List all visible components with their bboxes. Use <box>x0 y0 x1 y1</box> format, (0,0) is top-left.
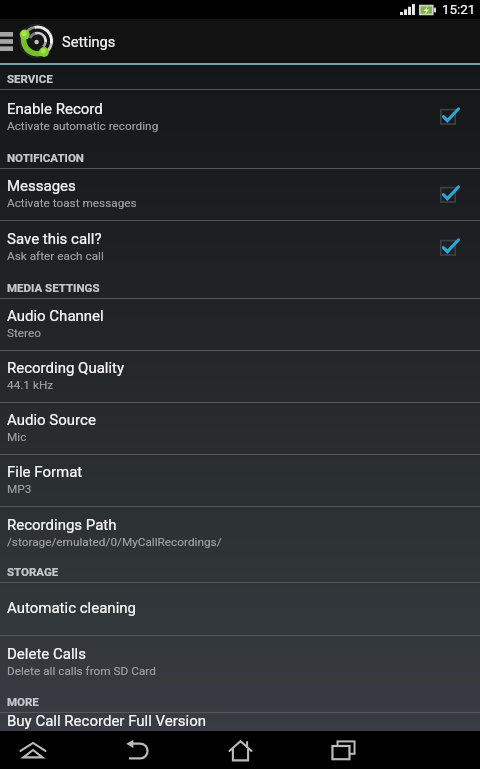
staticText: Settings <box>62 33 116 50</box>
staticText: Audio Source <box>7 411 96 429</box>
staticText: Delete all calls from SD Card <box>7 664 156 678</box>
button[interactable]: Enable Record <box>0 90 480 144</box>
staticText: Activate automatic recording <box>7 119 159 133</box>
button[interactable]: Recent apps <box>272 731 414 769</box>
button[interactable]: Recording Quality <box>0 351 480 403</box>
staticText: Recordings Path <box>7 516 117 534</box>
staticText: Activate toast messages <box>7 196 137 210</box>
staticText: Automatic cleaning <box>7 599 136 617</box>
staticText: Buy Call Recorder Full Version <box>7 712 207 730</box>
staticText: Ask after each call <box>7 249 104 263</box>
button[interactable]: Audio Channel <box>0 299 480 351</box>
staticText: File Format <box>7 463 83 481</box>
staticText: Messages <box>7 177 76 195</box>
staticText: Delete Calls <box>7 645 86 663</box>
staticText: STORAGE <box>7 565 59 578</box>
button[interactable]: File Format <box>0 455 480 507</box>
staticText: MP3 <box>7 482 32 496</box>
button[interactable]: Recordings Path <box>0 507 480 559</box>
staticText: Stereo <box>7 326 41 340</box>
staticText: MORE <box>7 695 39 708</box>
button[interactable]: Home <box>208 731 272 769</box>
button[interactable]: Back <box>66 731 208 769</box>
button[interactable]: Buy Call Recorder Full Version <box>0 713 480 731</box>
staticText: 15:21 <box>442 2 476 18</box>
button[interactable]: Messages <box>0 169 480 221</box>
staticText: SERVICE <box>7 72 53 85</box>
staticText: Audio Channel <box>7 307 104 325</box>
staticText: Save this call? <box>7 230 102 248</box>
button[interactable]: Menu <box>0 19 18 63</box>
staticText: Recording Quality <box>7 359 125 377</box>
staticText: /storage/emulated/0/MyCallRecordings/ <box>7 535 222 549</box>
button[interactable]: Delete Calls <box>0 636 480 688</box>
staticText: Mic <box>7 430 27 444</box>
staticText: 44.1 kHz <box>7 378 54 392</box>
button[interactable]: Save this call? <box>0 221 480 274</box>
button[interactable]: Audio Source <box>0 403 480 455</box>
button[interactable]: Automatic cleaning <box>0 583 480 636</box>
button[interactable]: Hide navigation <box>0 731 66 769</box>
staticText: MEDIA SETTINGS <box>7 281 100 294</box>
staticText: Enable Record <box>7 100 103 118</box>
staticText: NOTIFICATION <box>7 151 84 164</box>
